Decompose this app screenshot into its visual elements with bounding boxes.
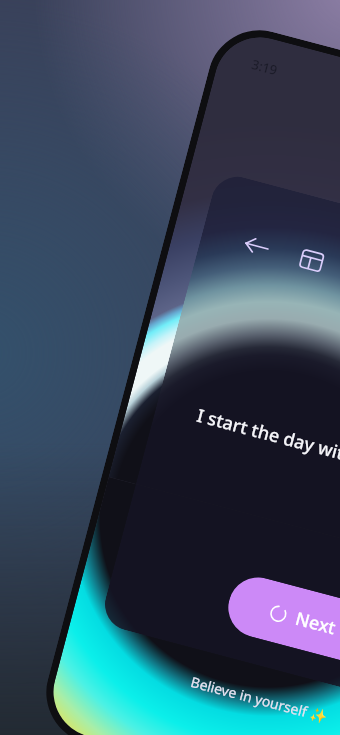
button[interactable]: Back <box>99 171 340 698</box>
staticText: 3:19 <box>250 55 279 79</box>
staticText: Next <box>293 606 339 640</box>
staticText: I start the day with gratitude <box>194 403 340 490</box>
button[interactable]: Next <box>222 571 340 668</box>
button[interactable]: Cards <box>296 245 328 276</box>
staticText: Believe in yourself ✨ <box>189 672 330 726</box>
button[interactable]: Back <box>241 230 272 262</box>
